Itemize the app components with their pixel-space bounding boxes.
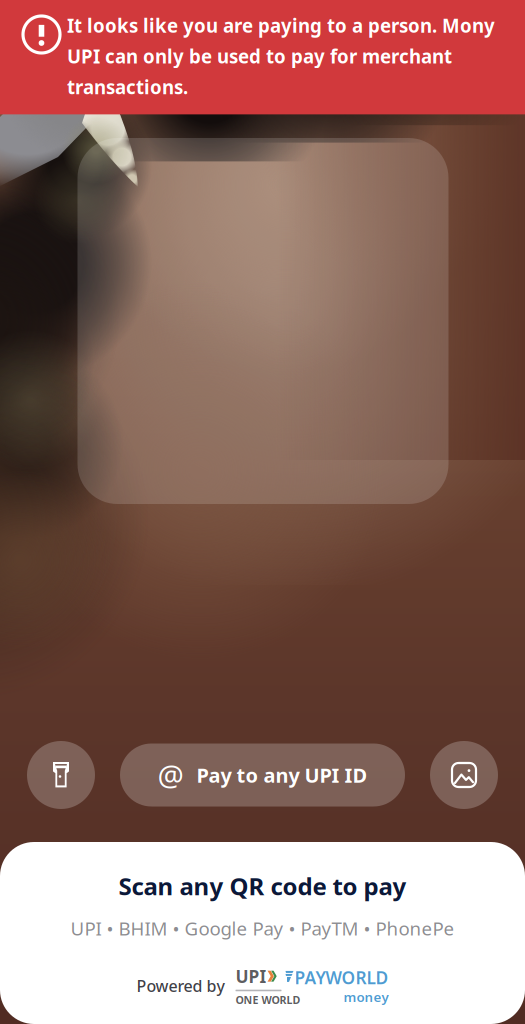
staticText: Powered by [136,975,224,996]
staticText: It looks like you are paying to a person… [67,13,495,99]
staticText: PAYWORLD [294,966,388,989]
staticText: money [343,988,388,1006]
staticText: @ [157,755,183,794]
button[interactable]: @ [120,743,405,806]
staticText: Scan any QR code to pay [118,870,406,902]
staticText: UPI • BHIM • Google Pay • PayTM • PhoneP… [70,916,454,941]
staticText: UPI [235,965,266,988]
staticText: ONE WORLD [235,993,300,1007]
button[interactable]: Choose QR from gallery [430,741,498,809]
button[interactable]: Flashlight [27,741,95,809]
staticText: Pay to any UPI ID [196,762,367,788]
